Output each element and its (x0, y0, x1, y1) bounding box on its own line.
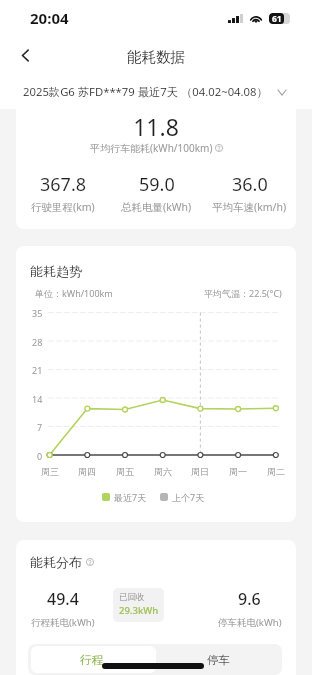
staticText: 平均气温：22.5(°C) (204, 287, 282, 299)
staticText: 9.6 (238, 588, 261, 610)
staticText: 行程 (80, 653, 103, 667)
staticText: 29.3kWh (119, 604, 159, 617)
staticText: 最近7天 (114, 491, 147, 503)
staticText: 平均车速(km/h) (212, 200, 287, 214)
staticText: 周三 (41, 466, 59, 477)
staticText: 49.4 (47, 588, 79, 610)
staticText: 20:04 (30, 8, 69, 28)
staticText: 28 (32, 336, 43, 348)
staticText: 行驶里程(km) (31, 200, 95, 214)
staticText: 11.8 (16, 111, 296, 142)
staticText: 14 (32, 393, 43, 405)
staticText: 停车 (207, 653, 230, 667)
staticText: 7 (37, 421, 43, 433)
staticText: 能耗分布 (30, 554, 82, 570)
staticText: 2025款G6 苏FD***79 最近7天 （04.02~04.08） (23, 84, 268, 99)
staticText: 35 (32, 307, 43, 319)
staticText: 平均行车能耗(kWh/100km) (90, 141, 213, 155)
button[interactable]: 行程 (28, 644, 155, 675)
staticText: 上个7天 (172, 491, 205, 503)
staticText: 21 (32, 364, 43, 376)
staticText: 总耗电量(kWh) (121, 200, 192, 214)
staticText: 周二 (267, 466, 285, 477)
staticText: 周日 (191, 466, 209, 477)
staticText: 停车耗电(kWh) (218, 616, 282, 629)
staticText: 59.0 (139, 172, 175, 197)
staticText: 能耗趋势 (30, 263, 82, 279)
staticText: 周四 (78, 466, 96, 477)
staticText: 单位：kWh/100km (35, 287, 113, 299)
staticText: 61 (272, 13, 282, 24)
staticText: 行程耗电(kWh) (31, 616, 95, 629)
staticText: 0 (37, 450, 43, 462)
staticText: 周一 (229, 466, 247, 477)
button[interactable]: 停车 (155, 644, 282, 675)
staticText: 周六 (154, 466, 172, 477)
button[interactable]: Back (10, 40, 40, 70)
staticText: 已回收 (119, 592, 145, 603)
staticText: 能耗数据 (127, 48, 185, 66)
staticText: 367.8 (40, 172, 87, 197)
button[interactable]: 2025款G6 苏FD***79 最近7天 （04.02~04.08） (0, 74, 312, 109)
staticText: 36.0 (232, 172, 268, 197)
staticText: 周五 (116, 466, 134, 477)
